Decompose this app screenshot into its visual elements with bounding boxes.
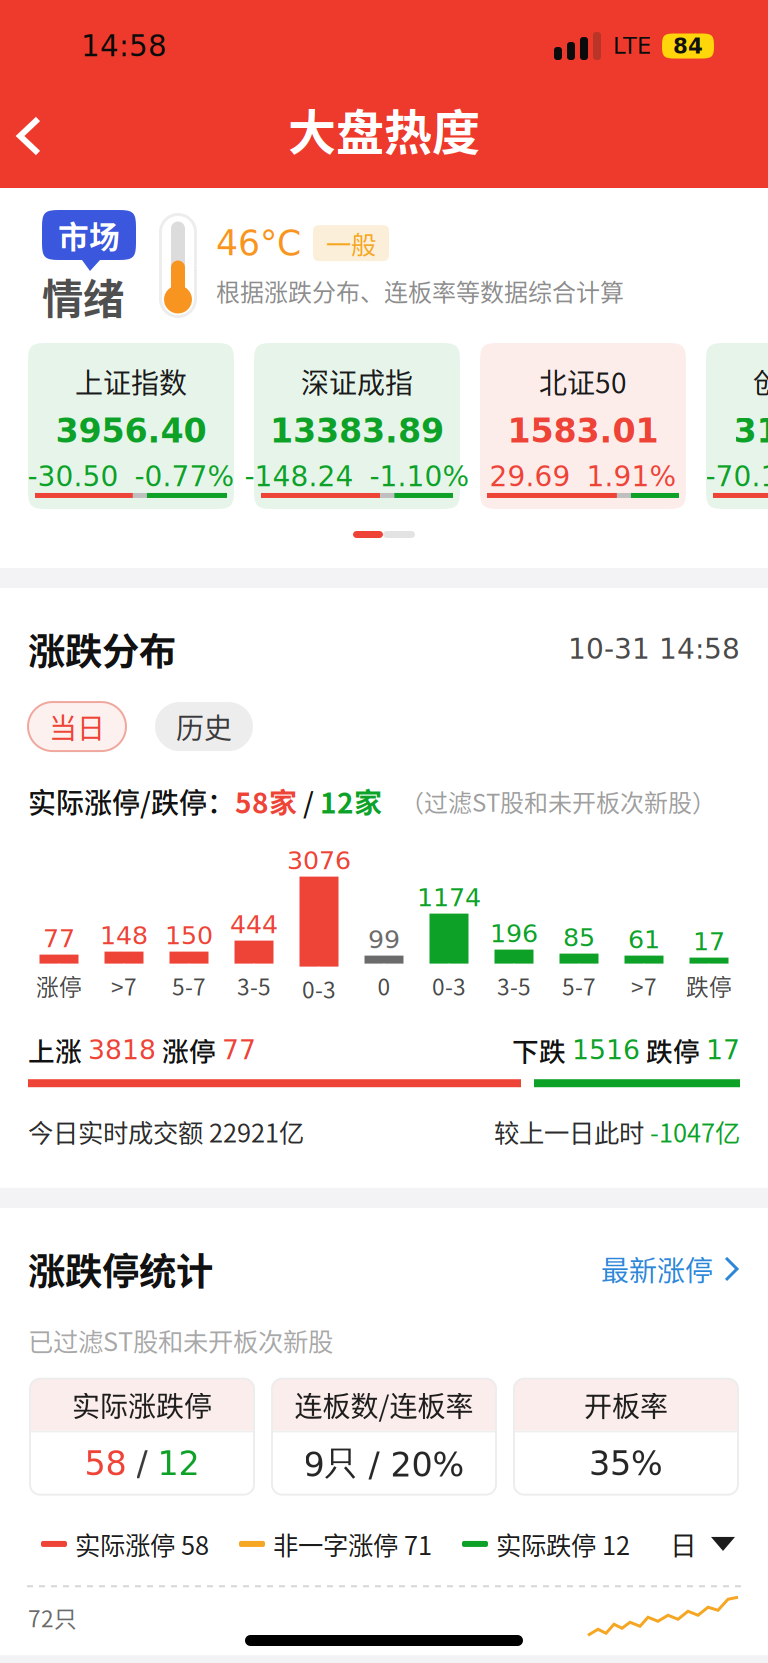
staticText: 当日 bbox=[49, 706, 105, 747]
staticText: 1.91% bbox=[586, 460, 676, 493]
staticText: 3956.40 bbox=[55, 412, 206, 450]
staticText: -1047亿 bbox=[650, 1113, 740, 1150]
staticText: 深证成指 bbox=[301, 361, 413, 401]
staticText: 10-31 14:58 bbox=[568, 633, 740, 665]
button[interactable]: 当日 bbox=[28, 702, 126, 751]
staticText: -0.77% bbox=[134, 460, 234, 493]
staticText: 3-5 bbox=[497, 969, 531, 1002]
staticText: 13383.89 bbox=[270, 412, 444, 450]
staticText: 根据涨跌分布、连板率等数据综合计算 bbox=[216, 273, 624, 308]
staticText: 跌停 bbox=[640, 1031, 706, 1069]
staticText: 46°C bbox=[216, 223, 301, 263]
staticText: -1.10% bbox=[369, 460, 469, 493]
staticText: 大盘热度 bbox=[288, 94, 480, 164]
staticText: 9只 / 20% bbox=[303, 1443, 464, 1485]
staticText: / bbox=[136, 1444, 147, 1483]
staticText: 北证50 bbox=[539, 361, 627, 401]
staticText: 17 bbox=[693, 927, 725, 956]
staticText: 444 bbox=[230, 910, 278, 939]
staticText: -148.24 bbox=[244, 460, 353, 493]
staticText: 非一字涨停 71 bbox=[273, 1526, 432, 1562]
staticText: 下跌 bbox=[512, 1031, 572, 1069]
staticText: 58 bbox=[84, 1444, 126, 1483]
staticText: 99 bbox=[368, 925, 400, 954]
staticText: 涨停 bbox=[156, 1031, 222, 1069]
staticText: 已过滤ST股和未开板次新股 bbox=[28, 1322, 333, 1359]
staticText: 较上一日此时 bbox=[494, 1113, 650, 1150]
staticText: 84 bbox=[673, 34, 703, 58]
staticText: 开板率 bbox=[584, 1384, 668, 1425]
staticText: 跌停 bbox=[686, 969, 732, 1002]
staticText: 实际涨停/跌停： bbox=[28, 781, 235, 822]
staticText: 29.69 bbox=[489, 460, 570, 493]
button[interactable]: 周期选择 bbox=[670, 1525, 735, 1563]
staticText: 0-3 bbox=[432, 969, 466, 1002]
staticText: 5-7 bbox=[172, 969, 206, 1002]
staticText: 85 bbox=[563, 923, 595, 952]
staticText: 实际跌停 12 bbox=[496, 1526, 630, 1562]
staticText: 58家 bbox=[235, 781, 297, 822]
staticText: 12 bbox=[157, 1444, 199, 1483]
staticText: >7 bbox=[111, 969, 137, 1002]
button[interactable]: 返回 bbox=[0, 97, 69, 183]
staticText: 72只 bbox=[28, 1601, 77, 1634]
staticText: 涨跌停统计 bbox=[28, 1242, 213, 1296]
staticText: （过滤ST股和未开板次新股） bbox=[400, 784, 716, 819]
staticText: 上涨 bbox=[28, 1031, 88, 1069]
staticText: 涨跌分布 bbox=[28, 622, 176, 676]
staticText: 一般 bbox=[326, 225, 376, 261]
staticText: / bbox=[297, 781, 320, 822]
staticText: 历史 bbox=[176, 706, 232, 747]
staticText: 61 bbox=[628, 925, 660, 954]
staticText: 市场 bbox=[58, 213, 120, 257]
staticText: 5-7 bbox=[562, 969, 596, 1002]
staticText: 最新涨停 bbox=[601, 1249, 713, 1289]
staticText: 0 bbox=[377, 969, 390, 1002]
staticText: 1583.01 bbox=[507, 412, 658, 450]
staticText: 196 bbox=[490, 919, 538, 948]
staticText: 实际涨跌停 bbox=[72, 1384, 212, 1425]
staticText: 上证指数 bbox=[75, 361, 187, 401]
staticText: 148 bbox=[100, 921, 148, 950]
staticText: 日 bbox=[670, 1525, 697, 1563]
staticText: 实际涨停 58 bbox=[75, 1526, 209, 1562]
staticText: 77 bbox=[222, 1034, 256, 1065]
staticText: >7 bbox=[631, 969, 657, 1002]
staticText: 今日实时成交额 22921亿 bbox=[28, 1113, 304, 1150]
staticText: 3-5 bbox=[237, 969, 271, 1002]
staticText: 3076 bbox=[287, 846, 351, 875]
staticText: 35% bbox=[589, 1444, 663, 1483]
staticText: 0-3 bbox=[302, 972, 336, 1005]
staticText: 1516 bbox=[572, 1034, 640, 1065]
staticText: 3818 bbox=[88, 1034, 156, 1065]
staticText: 3167.24 bbox=[733, 412, 768, 450]
staticText: 情绪 bbox=[42, 266, 124, 326]
staticText: 14:58 bbox=[81, 29, 167, 63]
staticText: LTE bbox=[613, 33, 651, 59]
staticText: 17 bbox=[706, 1034, 740, 1065]
staticText: 涨停 bbox=[36, 969, 82, 1002]
staticText: 连板数/连板率 bbox=[294, 1384, 473, 1425]
staticText: 12家 bbox=[320, 781, 382, 822]
staticText: -30.50 bbox=[27, 460, 118, 493]
button[interactable]: 历史 bbox=[155, 702, 253, 751]
staticText: -70.12 bbox=[705, 460, 768, 493]
staticText: 77 bbox=[43, 924, 75, 953]
staticText: 1174 bbox=[417, 883, 481, 912]
button[interactable]: 最新涨停 bbox=[601, 1249, 740, 1289]
staticText: 创业板指 bbox=[753, 361, 768, 401]
staticText: 150 bbox=[165, 921, 213, 950]
